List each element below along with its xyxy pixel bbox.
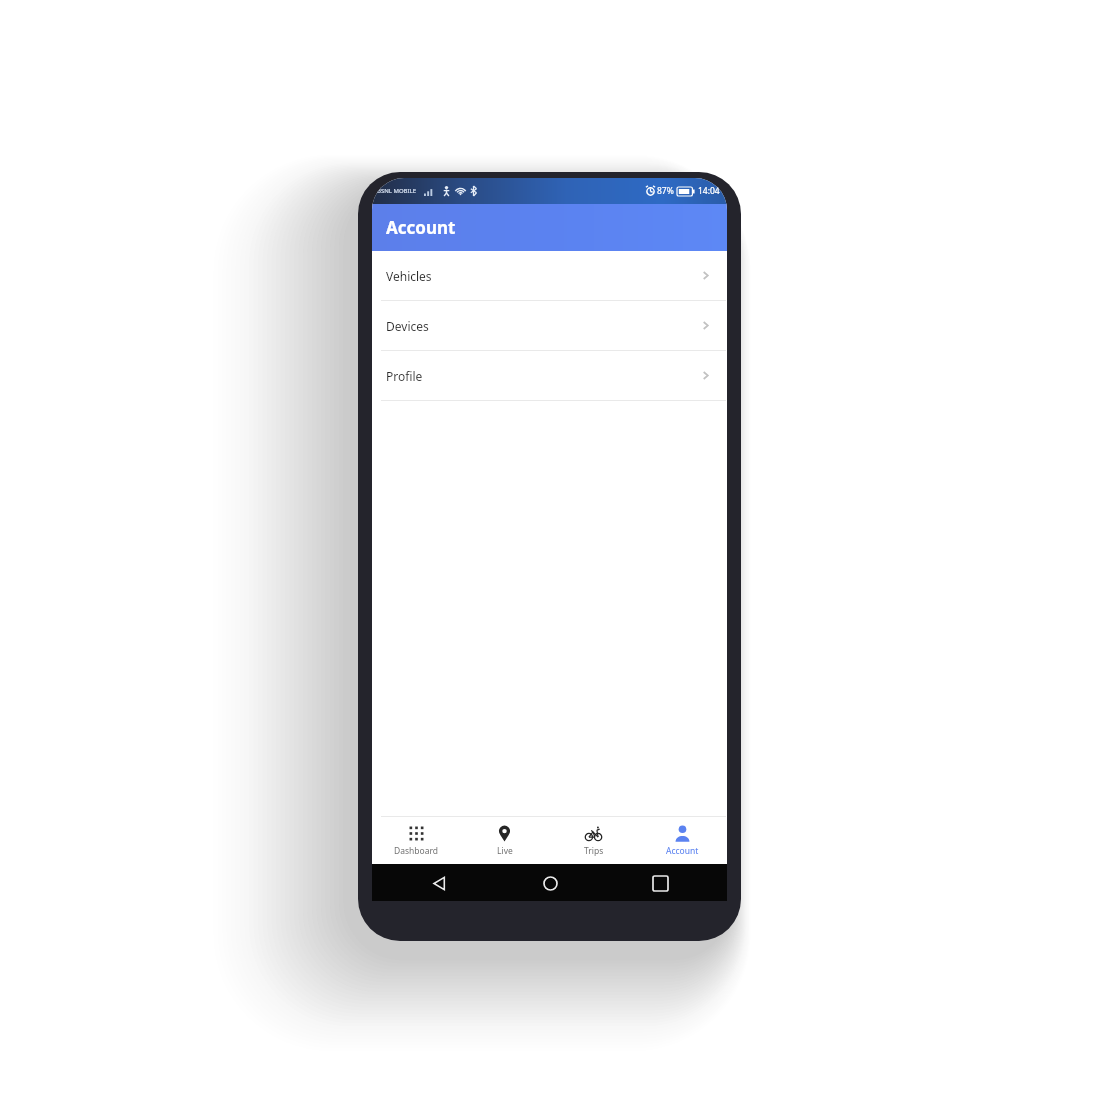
staticText: Trips <box>584 845 604 857</box>
button[interactable]: Trips <box>549 817 638 864</box>
button[interactable]: Devices <box>372 301 727 350</box>
staticText: Profile <box>386 368 423 384</box>
button[interactable]: Home <box>535 868 565 898</box>
staticText: Vehicles <box>386 268 432 284</box>
button[interactable]: Live <box>460 817 549 864</box>
staticText: 87% <box>657 185 674 197</box>
staticText: BSNL MOBILE <box>377 187 417 195</box>
staticText: 14:04 <box>698 185 720 197</box>
button[interactable]: Back <box>424 868 454 898</box>
button[interactable]: Recent apps <box>645 868 675 898</box>
button[interactable]: Account <box>638 817 727 864</box>
staticText: Live <box>497 845 513 857</box>
staticText: Dashboard <box>394 845 439 857</box>
button[interactable]: Vehicles <box>372 251 727 300</box>
button[interactable]: Profile <box>372 351 727 400</box>
staticText: Account <box>666 845 699 857</box>
button[interactable]: Dashboard <box>372 817 460 864</box>
staticText: Devices <box>386 318 429 334</box>
staticText: Account <box>386 216 456 239</box>
